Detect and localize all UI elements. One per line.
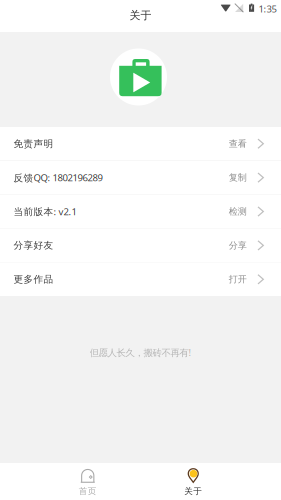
staticText: 检测 — [229, 206, 247, 217]
staticText: 当前版本: v2.1 — [13, 205, 76, 218]
staticText: 更多作品 — [13, 273, 53, 285]
staticText: 关于 — [184, 486, 202, 497]
staticText: 1:35 — [258, 2, 276, 15]
button[interactable]: 当前版本: v2.1 — [0, 195, 281, 228]
staticText: 分享好友 — [13, 239, 53, 251]
button[interactable]: 免责声明 — [0, 127, 281, 160]
staticText: 首页 — [79, 486, 97, 497]
staticText: 反馈QQ: 1802196289 — [13, 171, 102, 184]
button[interactable]: 反馈QQ: 1802196289 — [0, 161, 281, 194]
button[interactable]: 首页 — [35, 463, 140, 500]
button[interactable]: 分享好友 — [0, 229, 281, 262]
button[interactable]: 更多作品 — [0, 263, 281, 296]
staticText: 查看 — [229, 138, 247, 149]
staticText: 分享 — [229, 240, 247, 251]
staticText: 但愿人长久，搬砖不再有! — [89, 346, 191, 359]
staticText: 打开 — [229, 274, 247, 285]
staticText: 关于 — [129, 8, 151, 22]
staticText: 免责声明 — [13, 138, 53, 150]
staticText: 复制 — [229, 172, 247, 183]
button[interactable]: 关于 — [140, 463, 246, 500]
